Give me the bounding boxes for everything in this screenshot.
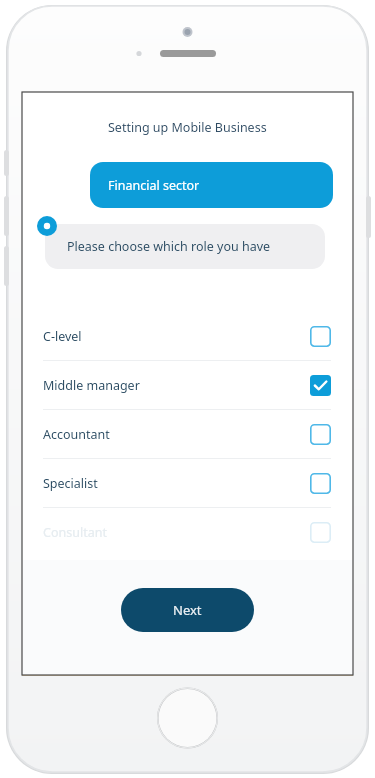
button[interactable]: Financial sector xyxy=(90,162,333,208)
other: Assistant avatar xyxy=(37,216,57,236)
staticText: Middle manager xyxy=(43,377,140,394)
staticText: Financial sector xyxy=(108,177,200,194)
button[interactable]: Not selected xyxy=(310,326,331,347)
button[interactable]: Not selected xyxy=(310,473,331,494)
button[interactable]: Consultant xyxy=(22,508,353,556)
button[interactable]: Not selected xyxy=(310,424,331,445)
staticText: Specialist xyxy=(43,475,98,492)
button[interactable]: Selected xyxy=(310,375,331,396)
staticText: Setting up Mobile Business xyxy=(108,119,267,136)
button[interactable]: Not selected xyxy=(310,522,331,543)
button[interactable]: Middle manager xyxy=(22,361,353,409)
staticText: Consultant xyxy=(43,524,107,541)
button[interactable]: Please choose which role you have xyxy=(45,224,325,269)
button[interactable]: Specialist xyxy=(22,459,353,507)
staticText: Next xyxy=(173,601,202,619)
button[interactable]: Accountant xyxy=(22,410,353,458)
staticText: Accountant xyxy=(43,426,110,443)
button[interactable]: C-level xyxy=(22,312,353,360)
button[interactable]: Next xyxy=(121,588,254,632)
staticText: Please choose which role you have xyxy=(67,238,271,255)
staticText: C-level xyxy=(43,328,82,345)
